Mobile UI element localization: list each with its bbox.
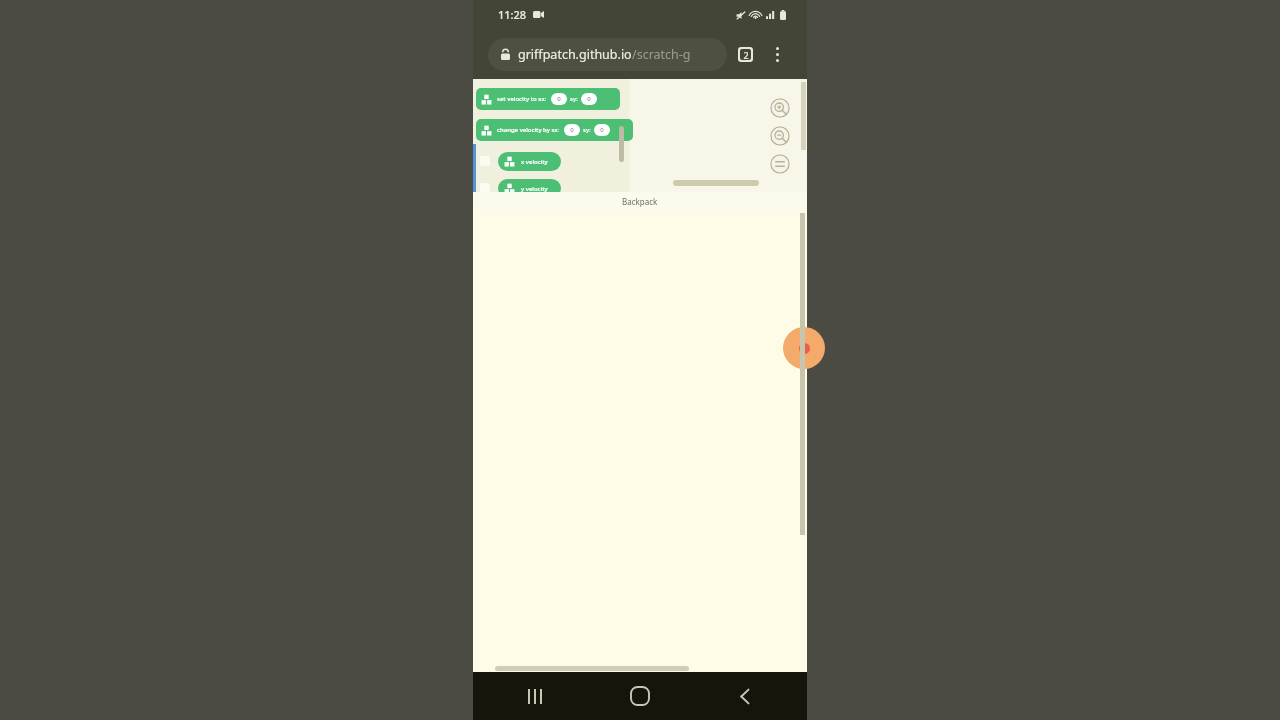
button[interactable]: y velocity: [498, 179, 561, 198]
staticText: 11:28: [498, 7, 527, 22]
button[interactable]: Recent apps: [511, 672, 559, 720]
button[interactable]: set velocity to sx:: [476, 88, 620, 110]
button[interactable]: x velocity: [498, 152, 561, 171]
button[interactable]: Reset zoom: [770, 154, 790, 174]
button[interactable]: griffpatch.github.io: [488, 38, 727, 71]
staticText: Backpack: [622, 196, 658, 207]
staticText: y velocity: [521, 185, 548, 193]
button[interactable]: Back: [721, 672, 769, 720]
staticText: /scratch-g: [632, 46, 691, 63]
button[interactable]: Backpack: [473, 192, 807, 211]
button[interactable]: Zoom out: [770, 126, 790, 146]
staticText: 0: [570, 126, 574, 134]
staticText: sy:: [570, 95, 578, 103]
button[interactable]: Zoom in: [770, 98, 790, 118]
button[interactable]: More options: [763, 40, 791, 68]
staticText: 0: [557, 95, 561, 103]
button[interactable]: change velocity by sx:: [476, 119, 633, 141]
button[interactable]: Home: [616, 672, 664, 720]
staticText: set velocity to sx:: [497, 95, 547, 103]
button[interactable]: Tabs, 2 open: [730, 39, 760, 69]
staticText: 0: [600, 126, 604, 134]
staticText: 0: [587, 95, 591, 103]
staticText: griffpatch.github.io: [518, 46, 632, 63]
staticText: change velocity by sx:: [497, 126, 560, 134]
staticText: x velocity: [521, 158, 548, 166]
staticText: sy:: [583, 126, 591, 134]
staticText: 2: [743, 49, 749, 60]
button[interactable]: Floating action: [783, 327, 825, 369]
